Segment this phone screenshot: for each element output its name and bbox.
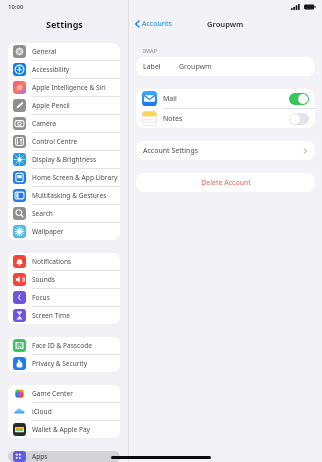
staticText: General [32,47,57,56]
button[interactable]: Camera [8,115,120,132]
staticText: Groupwm [179,62,212,72]
staticText: iCloud [32,407,52,416]
staticText: Home Screen & App Library [32,173,118,182]
staticText: Display & Brightness [32,155,97,164]
button[interactable]: Search [8,205,120,222]
staticText: Groupwm [207,19,244,29]
staticText: Wallpaper [32,227,64,236]
staticText: Search [32,209,53,218]
staticText: Sounds [32,275,55,284]
staticText: Camera [32,119,57,128]
button[interactable]: Toggle off [289,113,309,125]
button[interactable]: Notifications [8,253,120,270]
staticText: Delete Account [201,178,251,188]
button[interactable]: Mail [136,89,315,108]
staticText: 10:00 [8,3,24,11]
button[interactable]: Apple Intelligence & Siri [8,79,120,96]
staticText: Mail [163,94,177,104]
staticText: Apple Intelligence & Siri [32,83,106,92]
staticText: IMAP [143,47,158,54]
staticText: Settings [46,18,83,30]
staticText: Notes [163,114,183,124]
button[interactable]: Focus [8,289,120,306]
staticText: Control Centre [32,137,78,146]
button[interactable]: Delete Account [136,173,315,192]
button[interactable]: Notes [136,109,315,128]
button[interactable]: Home Screen & App Library [8,169,120,186]
button[interactable]: Accounts [134,17,173,31]
button[interactable]: Screen Time [8,307,120,324]
staticText: Accounts [142,19,172,29]
staticText: Apple Pencil [32,101,70,110]
button[interactable]: Game Center [8,385,120,402]
staticText: Accessibility [32,65,70,74]
staticText: Apps [32,452,48,461]
button[interactable]: General [8,43,120,60]
button[interactable]: Apple Pencil [8,97,120,114]
button[interactable]: Display & Brightness [8,151,120,168]
staticText: Multitasking & Gestures [32,191,107,200]
button[interactable]: Apps [8,451,120,462]
staticText: Screen Time [32,311,70,320]
button[interactable]: Sounds [8,271,120,288]
button[interactable]: Privacy & Security [8,355,120,372]
button[interactable]: Wallet & Apple Pay [8,421,120,438]
button[interactable]: Face ID & Passcode [8,337,120,354]
staticText: Game Center [32,389,73,398]
staticText: Label [143,62,161,72]
button[interactable]: Account Settings [136,141,315,160]
button[interactable]: Multitasking & Gestures [8,187,120,204]
staticText: Face ID & Passcode [32,341,92,350]
button[interactable]: iCloud [8,403,120,420]
staticText: Wallet & Apple Pay [32,425,90,434]
button[interactable]: Label [136,57,315,76]
staticText: Account Settings [143,146,199,156]
button[interactable]: Toggle on [289,93,309,105]
staticText: Focus [32,293,50,302]
button[interactable]: Accessibility [8,61,120,78]
staticText: Notifications [32,257,72,266]
button[interactable]: Control Centre [8,133,120,150]
staticText: Privacy & Security [32,359,87,368]
button[interactable]: Wallpaper [8,223,120,240]
